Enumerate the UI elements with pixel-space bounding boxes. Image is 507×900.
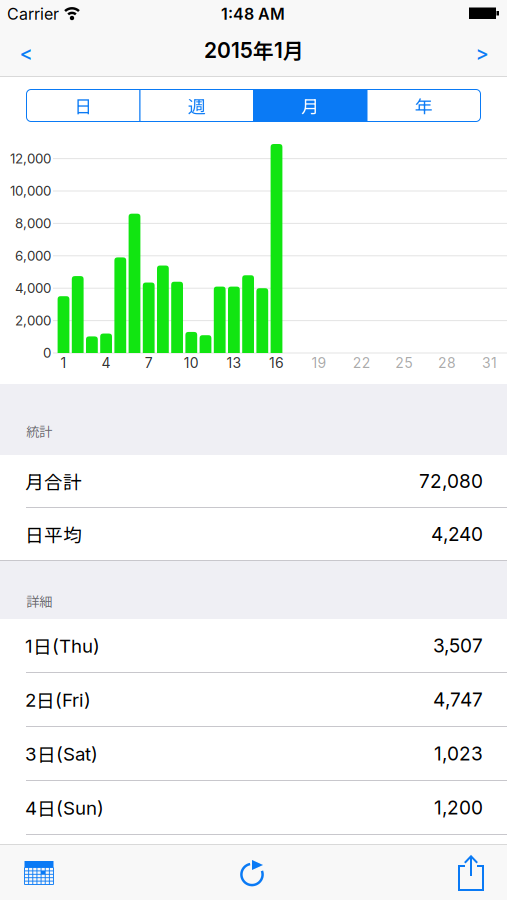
- staticText: 0: [43, 345, 51, 361]
- staticText: 3,507: [433, 634, 483, 657]
- button[interactable]: 1日(Thu): [0, 619, 507, 673]
- button[interactable]: 日: [27, 90, 139, 121]
- staticText: 6,000: [15, 248, 51, 264]
- button[interactable]: 週: [140, 90, 253, 121]
- button[interactable]: 3日(Sat): [0, 727, 507, 781]
- staticText: 31: [482, 354, 497, 371]
- button[interactable]: 年: [367, 90, 480, 121]
- staticText: 4,000: [15, 280, 51, 296]
- button[interactable]: 4日(Sun): [0, 781, 507, 835]
- staticText: >: [475, 41, 488, 65]
- button[interactable]: Previous month: [8, 38, 44, 68]
- staticText: 10,000: [10, 183, 51, 199]
- button[interactable]: Next month: [464, 38, 500, 68]
- staticText: 28: [438, 354, 456, 371]
- staticText: 3日(Sat): [25, 740, 98, 767]
- staticText: 25: [395, 354, 413, 371]
- button[interactable]: Refresh: [231, 853, 275, 893]
- staticText: 2,000: [15, 312, 51, 329]
- staticText: 8,000: [15, 215, 51, 231]
- staticText: 4,747: [433, 688, 483, 711]
- staticText: 4: [102, 354, 111, 371]
- staticText: 2日(Fri): [25, 686, 91, 713]
- staticText: 19: [312, 354, 327, 371]
- staticText: 22: [353, 354, 371, 371]
- button[interactable]: 日平均: [0, 508, 507, 561]
- button[interactable]: Share: [449, 853, 493, 893]
- staticText: 1: [60, 354, 66, 371]
- staticText: 2015年1月: [204, 34, 304, 65]
- staticText: 週: [188, 92, 206, 119]
- staticText: 13: [226, 354, 241, 371]
- staticText: 1日(Thu): [25, 632, 100, 659]
- button[interactable]: Calendar: [17, 853, 61, 893]
- staticText: 月: [301, 92, 319, 119]
- staticText: 1,023: [434, 742, 483, 765]
- staticText: 年: [415, 92, 433, 119]
- staticText: 7: [145, 354, 153, 371]
- staticText: 日平均: [25, 520, 82, 547]
- staticText: 4,240: [431, 522, 483, 545]
- staticText: 10: [184, 354, 199, 371]
- staticText: Carrier: [7, 4, 59, 24]
- staticText: 日: [74, 92, 92, 119]
- staticText: 1,200: [434, 796, 483, 819]
- staticText: 詳細: [26, 591, 52, 611]
- staticText: 月合計: [25, 467, 82, 494]
- button[interactable]: 2日(Fri): [0, 673, 507, 727]
- staticText: 統計: [26, 421, 52, 441]
- staticText: 1:48 AM: [221, 4, 285, 24]
- button[interactable]: 月合計: [0, 455, 507, 508]
- staticText: 4日(Sun): [25, 794, 104, 821]
- staticText: 72,080: [419, 469, 483, 492]
- staticText: 16: [269, 354, 284, 371]
- staticText: 12,000: [10, 150, 51, 167]
- staticText: <: [19, 41, 32, 65]
- button[interactable]: 月: [254, 90, 366, 121]
